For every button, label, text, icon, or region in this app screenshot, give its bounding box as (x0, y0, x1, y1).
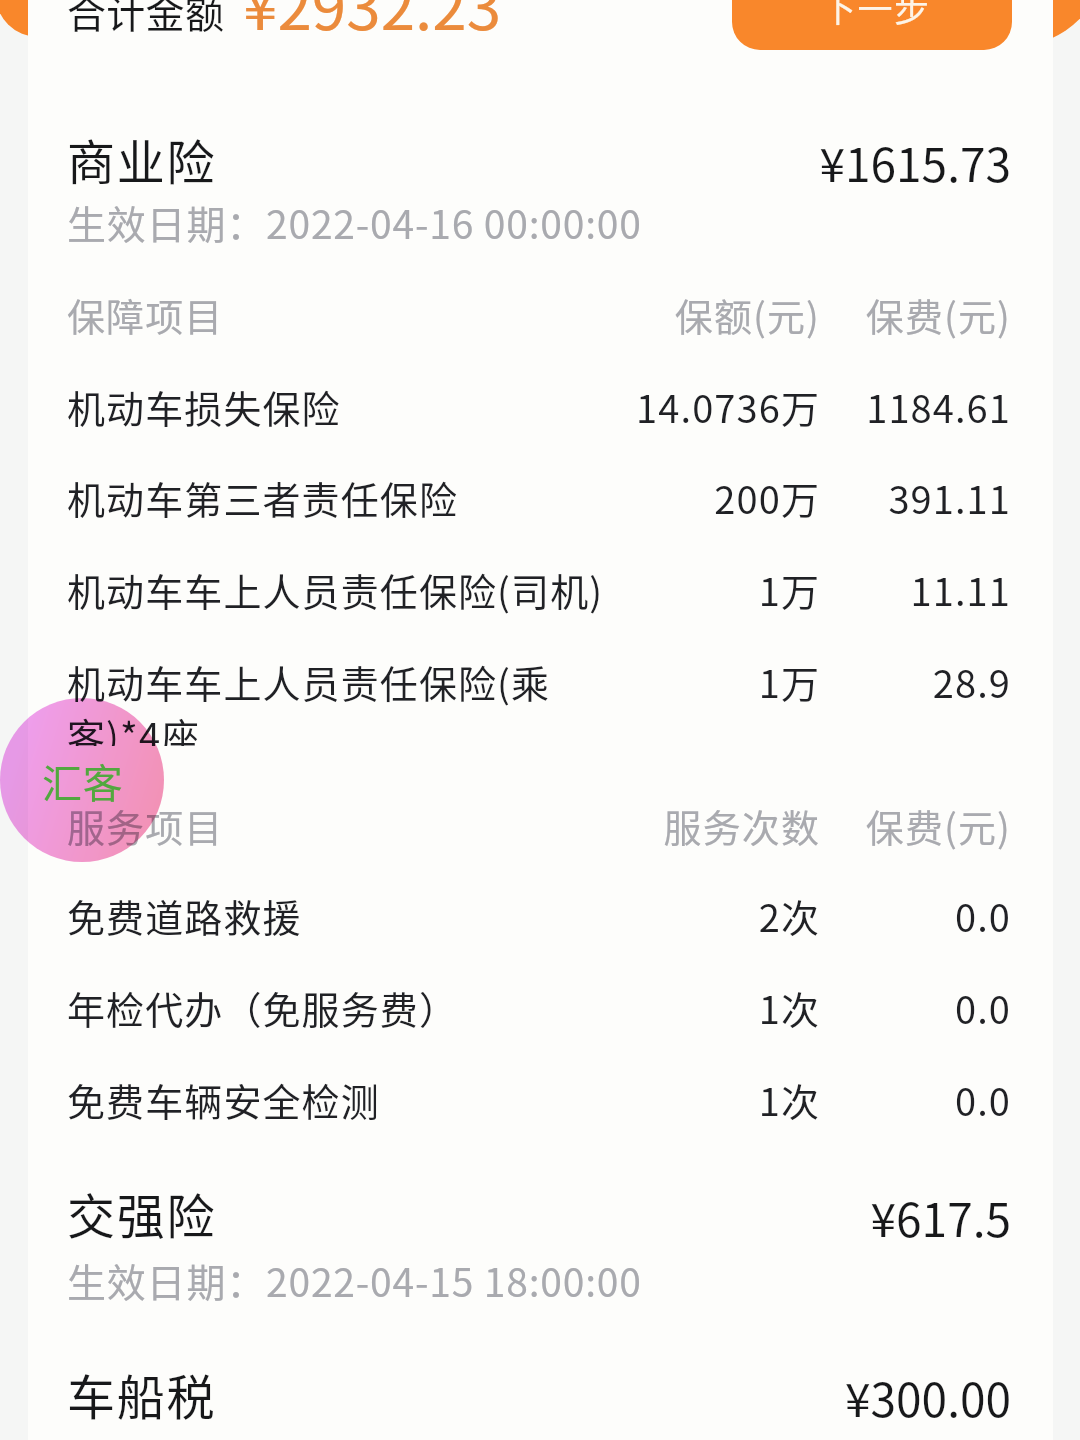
staticText: 机动车损失保险 (67, 379, 623, 434)
staticText: 免费车辆安全检测 (67, 1072, 623, 1127)
staticText: 免费道路救援 (67, 888, 623, 943)
staticText: 1万 (520, 654, 820, 709)
staticText: 机动车车上人员责任保险(司机) (67, 562, 623, 617)
button[interactable]: 车船税 (28, 1343, 1053, 1427)
button[interactable]: 下一步 (732, 0, 1012, 50)
staticText: 合计金额 (67, 0, 225, 39)
staticText: 200万 (520, 470, 820, 525)
staticText: 保额(元) (520, 287, 820, 342)
button[interactable]: 商业险 (28, 108, 1053, 192)
staticText: 机动车第三者责任保险 (67, 470, 623, 525)
staticText: 年检代办（免服务费） (67, 980, 623, 1035)
staticText: 汇客 (42, 752, 124, 810)
staticText: ¥1615.73 (611, 129, 1011, 196)
button[interactable]: 机动车车上人员责任保险(乘客)*4座 (28, 644, 1053, 736)
staticText: 保费(元) (711, 798, 1011, 853)
staticText: ¥300.00 (611, 1364, 1011, 1431)
staticText: 14.0736万 (520, 379, 820, 434)
staticText: ¥617.5 (611, 1184, 1011, 1251)
staticText: 保障项目 (67, 287, 623, 342)
staticText: 1184.61 (711, 379, 1011, 434)
staticText: 1次 (520, 1072, 820, 1127)
staticText: 1万 (520, 562, 820, 617)
staticText: 机动车车上人员责任保险(乘客)*4座 (67, 654, 623, 746)
staticText: 2次 (520, 888, 820, 943)
button[interactable]: 保障项目 (28, 277, 1053, 369)
staticText: 下一步 (821, 0, 931, 32)
staticText: 391.11 (711, 470, 1011, 525)
staticText: 0.0 (711, 1072, 1011, 1127)
button[interactable]: 免费道路救援 (28, 878, 1053, 970)
staticText: 0.0 (711, 888, 1011, 943)
staticText: 11.11 (711, 562, 1011, 617)
staticText: 服务次数 (520, 798, 820, 853)
staticText: 28.9 (711, 654, 1011, 709)
button[interactable]: 机动车车上人员责任保险(司机) (28, 552, 1053, 644)
button[interactable]: 交强险 (28, 1162, 1053, 1246)
staticText: 0.0 (711, 980, 1011, 1035)
staticText: 服务项目 (67, 798, 623, 853)
button[interactable]: 机动车损失保险 (28, 369, 1053, 461)
staticText: 生效日期：2022-04-16 00:00:00 (67, 194, 642, 250)
staticText: 交强险 (67, 1178, 217, 1248)
button[interactable]: 免费车辆安全检测 (28, 1062, 1053, 1154)
button[interactable]: 年检代办（免服务费） (28, 970, 1053, 1062)
staticText: 商业险 (67, 124, 217, 194)
staticText: ¥2932.23 (243, 0, 502, 48)
staticText: 车船税 (67, 1359, 217, 1429)
staticText: 1次 (520, 980, 820, 1035)
button[interactable]: 机动车第三者责任保险 (28, 460, 1053, 552)
staticText: 生效日期：2022-04-15 18:00:00 (67, 1252, 642, 1308)
staticText: 保费(元) (711, 287, 1011, 342)
button[interactable]: 服务项目 (28, 788, 1053, 880)
